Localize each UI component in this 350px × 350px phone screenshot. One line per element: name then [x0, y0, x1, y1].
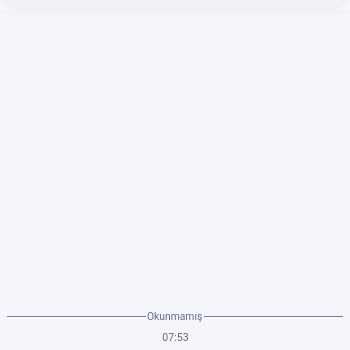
staticText: Okunmamış — [147, 310, 203, 322]
button[interactable]: 07:53 — [162, 331, 189, 343]
button[interactable]: Okunmamış — [7, 310, 343, 322]
